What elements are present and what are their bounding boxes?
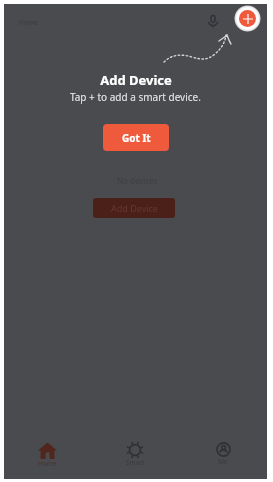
button[interactable]: Smart: [91, 435, 179, 479]
staticText: Home: [38, 459, 57, 468]
button[interactable]: Add Device: [93, 198, 175, 218]
staticText: Tap + to add a smart device.: [70, 90, 201, 104]
staticText: Smart: [126, 458, 145, 467]
button[interactable]: Add device: [234, 5, 261, 32]
button[interactable]: Home: [4, 435, 91, 479]
staticText: Add Device: [100, 71, 172, 89]
button[interactable]: Got It: [103, 124, 169, 151]
button[interactable]: Voice control: [202, 10, 224, 32]
button[interactable]: Me: [179, 435, 267, 479]
staticText: Got It: [122, 131, 151, 145]
staticText: Me: [218, 457, 228, 466]
staticText: No devices: [117, 175, 158, 186]
staticText: Add Device: [111, 202, 158, 214]
staticText: Home: [19, 18, 38, 27]
